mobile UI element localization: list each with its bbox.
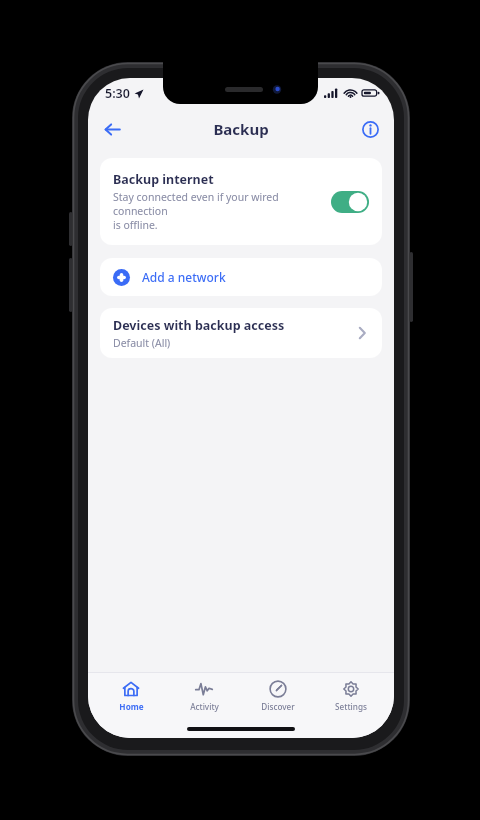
button[interactable]: Information	[355, 114, 385, 144]
button[interactable]: Settings	[320, 677, 382, 715]
staticText: Backup internet	[113, 171, 214, 188]
staticText: Add a network	[142, 269, 226, 285]
button[interactable]: Backup internet toggle, on	[331, 191, 369, 213]
staticText: Default (All)	[113, 336, 171, 350]
button[interactable]: Backup internet	[100, 158, 382, 245]
staticText: 5:30	[105, 85, 130, 102]
button[interactable]: Activity	[173, 677, 235, 715]
staticText: Settings	[335, 701, 367, 712]
button[interactable]: Back	[97, 114, 127, 144]
button[interactable]: Devices with backup access	[100, 308, 382, 358]
button[interactable]: Home	[100, 677, 162, 715]
staticText: Devices with backup access	[113, 317, 285, 334]
staticText: Backup	[213, 119, 269, 139]
button[interactable]: Add a network	[100, 258, 382, 296]
staticText: Activity	[190, 701, 219, 712]
staticText: Stay connected even if your wired connec…	[113, 190, 325, 232]
button[interactable]: Discover	[247, 677, 309, 715]
staticText: Home	[119, 701, 144, 712]
staticText: Discover	[261, 701, 295, 712]
